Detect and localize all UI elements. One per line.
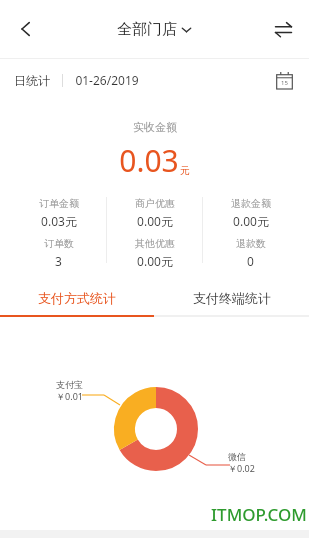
staticText: 支付终端统计 [193, 290, 271, 306]
staticText: ITMOP.COM [211, 503, 307, 526]
staticText: 日统计 [14, 73, 50, 88]
staticText: 0.00元 [233, 213, 269, 229]
button[interactable]: 全部门店 [111, 16, 198, 43]
button[interactable]: Back [6, 9, 46, 49]
staticText: 01-26/2019 [75, 72, 139, 88]
staticText: 支付宝 [56, 379, 83, 390]
staticText: 0.03 [119, 140, 179, 181]
staticText: 订单数 [44, 237, 74, 250]
staticText: 微信 [228, 451, 246, 462]
staticText: 全部门店 [117, 20, 177, 39]
button[interactable]: Pick date [269, 65, 299, 95]
staticText: 0.00元 [137, 213, 173, 229]
staticText: ￥0.02 [228, 462, 255, 474]
staticText: 其他优惠 [135, 237, 175, 250]
button[interactable]: 日统计 [14, 73, 50, 88]
staticText: 0 [247, 253, 254, 269]
staticText: 0.00元 [137, 253, 173, 269]
staticText: 退款数 [236, 237, 266, 250]
staticText: 退款金额 [231, 197, 271, 210]
staticText: 15 [281, 79, 288, 87]
staticText: 支付方式统计 [38, 290, 116, 306]
staticText: ￥0.01 [56, 390, 83, 402]
button[interactable]: 支付方式统计 [0, 281, 154, 315]
button[interactable]: 01-26/2019 [75, 72, 139, 88]
staticText: 订单金额 [39, 197, 79, 210]
staticText: 商户优惠 [135, 197, 175, 210]
staticText: 0.03元 [41, 213, 77, 229]
staticText: 实收金额 [133, 120, 177, 134]
button[interactable]: 支付终端统计 [154, 281, 309, 315]
staticText: 3 [55, 253, 62, 269]
button[interactable]: 实收金额 [11, 107, 298, 272]
button[interactable]: Switch [263, 9, 303, 49]
staticText: 元 [180, 164, 190, 177]
